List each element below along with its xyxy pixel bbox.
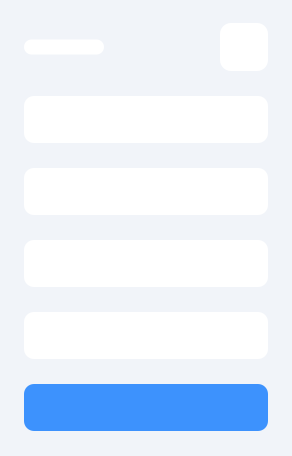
button[interactable]: Continue xyxy=(24,384,268,431)
